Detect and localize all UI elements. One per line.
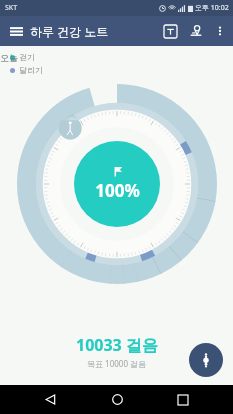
button[interactable]: More actions xyxy=(189,343,223,377)
staticText: 오늘 xyxy=(0,52,18,63)
button[interactable]: 100% xyxy=(74,141,160,227)
staticText: 100% xyxy=(95,179,140,202)
button[interactable]: 걷기 xyxy=(10,52,35,62)
button[interactable]: 달리기 xyxy=(10,65,43,75)
button[interactable]: Recent apps xyxy=(166,385,200,414)
button[interactable]: Map xyxy=(183,18,209,44)
staticText: SKT xyxy=(5,3,18,13)
button[interactable]: Calendar xyxy=(157,18,183,44)
button[interactable]: Home xyxy=(100,385,134,414)
staticText: 걷기 xyxy=(19,52,35,62)
button[interactable]: Back xyxy=(33,385,67,414)
button[interactable]: 오늘 xyxy=(0,52,18,63)
button[interactable]: Menu xyxy=(4,19,28,43)
staticText: 10033 걸음 xyxy=(76,334,158,356)
button[interactable]: More options xyxy=(209,20,231,42)
staticText: 달리기 xyxy=(19,65,43,75)
staticText: 오후 10:02 xyxy=(195,3,229,13)
staticText: 목표 10000 걸음 xyxy=(87,358,147,369)
staticText: 하루 건강 노트 xyxy=(30,23,109,39)
